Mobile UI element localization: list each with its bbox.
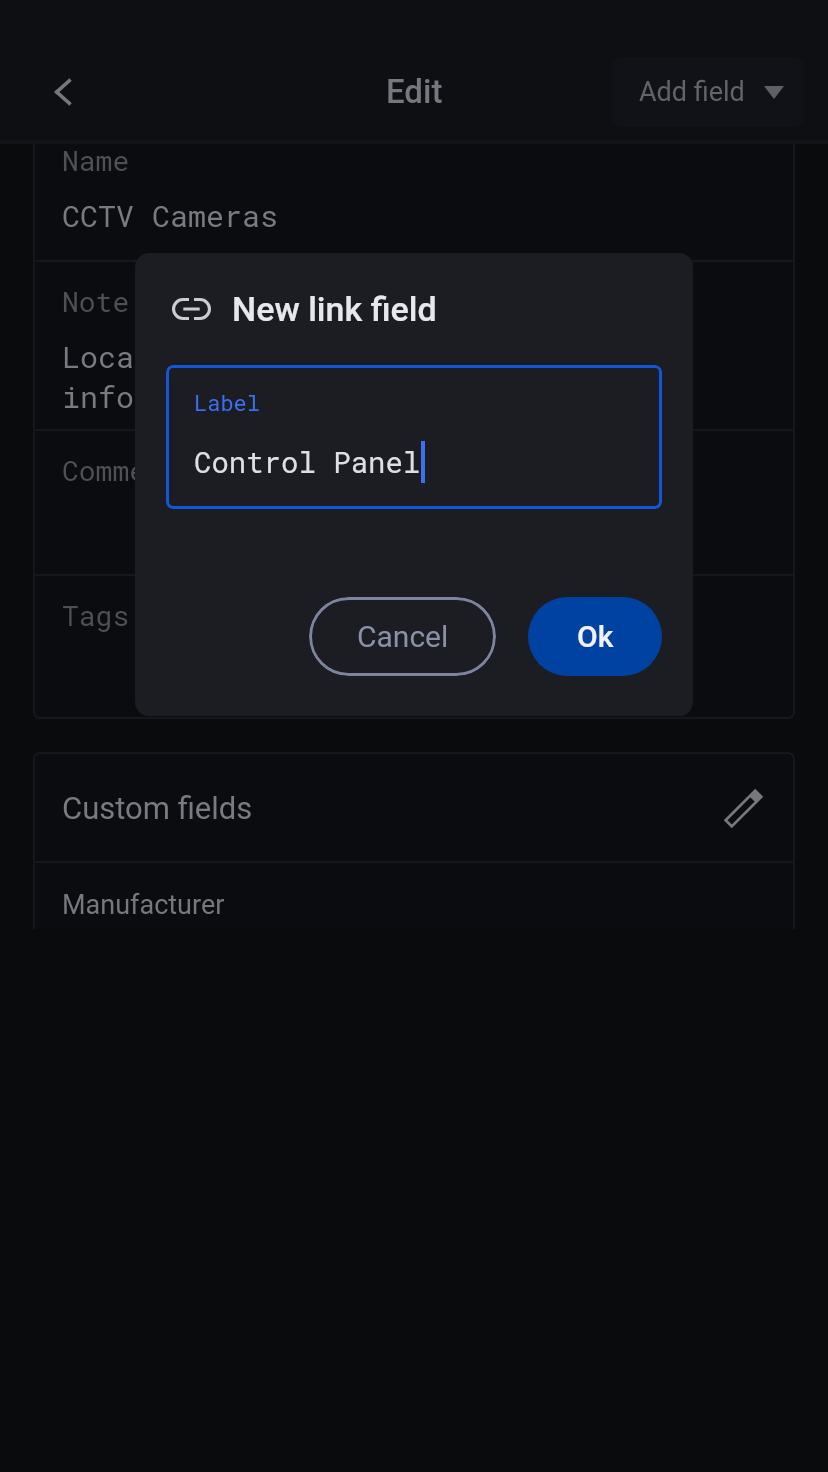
staticText: Manufacturer [62,889,225,921]
staticText: Custom fields [62,790,253,826]
staticText: CCTV Cameras [62,196,279,236]
staticText: Comment [62,452,180,489]
staticText: Label [194,388,261,417]
staticText: Control Panel [194,443,421,481]
button[interactable]: Edit custom fields [715,780,771,836]
button[interactable]: Add field [612,57,804,127]
button[interactable]: Label [166,365,662,509]
staticText: Tags (0) [62,597,197,634]
staticText: Name [62,142,130,179]
staticText: Edit [386,72,443,111]
button[interactable]: Ok [528,597,662,676]
staticText: Cancel [357,619,449,654]
button[interactable]: Tags (0) [35,576,793,717]
staticText: Note [62,283,130,320]
staticText: Local network [62,337,297,377]
staticText: New link field [232,289,437,329]
staticText: Add field [639,76,745,108]
button[interactable]: Back [28,57,98,127]
staticText: info [62,377,135,417]
button[interactable]: Comment [35,431,793,574]
button[interactable]: Name [35,140,793,260]
staticText: Ok [577,619,614,654]
button[interactable]: Custom fields [35,754,793,861]
button[interactable]: Note [35,262,793,429]
button[interactable]: Cancel [309,597,496,676]
